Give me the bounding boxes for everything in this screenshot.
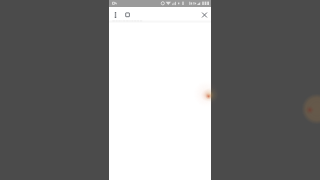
- button[interactable]: Close: [200, 10, 209, 20]
- button[interactable]: Tabs: [123, 10, 132, 20]
- button[interactable]: More options: [111, 10, 120, 20]
